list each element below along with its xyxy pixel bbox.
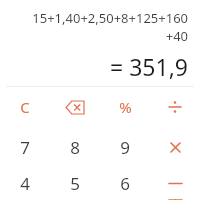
button[interactable]: 7	[0, 127, 50, 167]
staticText: 6	[120, 172, 130, 195]
staticText: C	[20, 97, 30, 117]
staticText: +40	[165, 27, 188, 45]
staticText: %	[119, 97, 132, 117]
button[interactable]: C	[0, 87, 50, 127]
staticText: 9	[120, 136, 130, 159]
button[interactable]: 9	[100, 127, 150, 167]
button[interactable]: 6	[100, 167, 150, 200]
staticText: 5	[70, 172, 80, 195]
button[interactable]: 4	[0, 167, 50, 200]
staticText: = 351,9	[110, 51, 188, 82]
button[interactable]: Subtract	[150, 167, 200, 200]
staticText: 8	[70, 136, 80, 159]
button[interactable]: Multiply	[150, 127, 200, 167]
button[interactable]: 8	[50, 127, 100, 167]
button[interactable]: %	[100, 87, 150, 127]
button[interactable]: Divide	[150, 87, 200, 127]
button[interactable]: Backspace	[50, 87, 100, 127]
staticText: 4	[20, 172, 30, 195]
button[interactable]: 5	[50, 167, 100, 200]
staticText: 7	[20, 136, 30, 159]
staticText: 15+1,40+2,50+8+125+160	[32, 9, 188, 27]
